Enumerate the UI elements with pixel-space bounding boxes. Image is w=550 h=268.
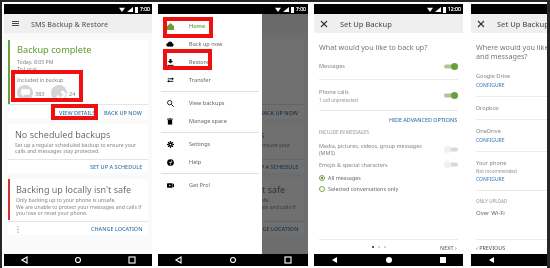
button[interactable]: Recents xyxy=(282,254,294,266)
staticText: Backing up locally isn't safe xyxy=(170,183,286,195)
button[interactable]: SET UP A SCHEDULE xyxy=(90,163,148,170)
button[interactable]: Back xyxy=(172,254,184,266)
staticText: ‹ PREVIOUS xyxy=(476,244,506,251)
staticText: HIDE ADVANCED OPTIONS xyxy=(389,116,458,123)
button[interactable]: Recents xyxy=(437,254,449,266)
staticText: Restore xyxy=(189,58,210,66)
staticText: 24 xyxy=(69,90,76,97)
button[interactable]: HIDE ADVANCED OPTIONS xyxy=(389,116,458,123)
button[interactable]: Media, pictures, videos, group messages … xyxy=(319,142,458,156)
staticText: To Local xyxy=(17,65,37,72)
button[interactable]: Back xyxy=(328,254,340,266)
button[interactable]: Close xyxy=(471,14,491,33)
staticText: CHANGE LOCATION xyxy=(91,225,143,232)
staticText: Media, pictures, videos, group messages … xyxy=(319,142,438,156)
button[interactable]: Google Drive xyxy=(476,72,547,89)
staticText: BACK UP NOW xyxy=(104,109,143,116)
button[interactable]: Messages xyxy=(319,62,458,70)
staticText: We are unable to protect your messages a… xyxy=(170,203,299,217)
staticText: BACK UP NOW xyxy=(260,109,299,116)
button[interactable]: Home xyxy=(72,254,84,266)
staticText: CONFIGURE xyxy=(476,82,505,89)
staticText: 383 xyxy=(35,90,45,97)
staticText: Messages xyxy=(319,62,444,70)
staticText: Only backing up to your phone is unsafe. xyxy=(16,196,116,203)
staticText: We are unable to protect your messages a… xyxy=(16,203,143,217)
staticText: Your phone xyxy=(476,159,507,167)
staticText: ONLY UPLOAD xyxy=(476,198,508,204)
staticText: Included in backup xyxy=(17,76,64,83)
button[interactable]: Settings xyxy=(158,135,262,153)
staticText: Settings xyxy=(189,140,211,148)
staticText: Get Pro! xyxy=(189,181,211,189)
button[interactable]: OneDrive xyxy=(476,127,547,144)
staticText: SET UP A SCHEDULE xyxy=(90,163,143,170)
button[interactable]: BACK UP NOW xyxy=(100,109,148,116)
button[interactable]: View backups xyxy=(158,94,262,112)
staticText: VIEW DETAILS xyxy=(59,109,96,116)
staticText: SMS Backup & Restore xyxy=(31,19,109,29)
button[interactable]: More options xyxy=(14,225,22,233)
button[interactable]: Back up now xyxy=(158,35,262,53)
button[interactable]: Your phone xyxy=(476,159,547,183)
staticText: OneDrive xyxy=(476,127,501,135)
staticText: 7:00 xyxy=(140,6,150,13)
staticText: Where would you like to back up your cal… xyxy=(476,42,547,62)
staticText: Set up a regular scheduled backup to ens… xyxy=(169,141,299,155)
staticText: NEXT › xyxy=(440,244,457,251)
staticText: CHANGE LOCATION xyxy=(247,225,299,232)
staticText: CONFIGURE xyxy=(476,137,505,144)
button[interactable]: Back xyxy=(485,254,497,266)
staticText: View backups xyxy=(189,99,225,107)
staticText: Home xyxy=(189,22,206,30)
staticText: Today, 8:05 PM xyxy=(17,58,54,65)
staticText: No scheduled backups xyxy=(169,128,265,140)
button[interactable]: Phone calls xyxy=(319,88,458,103)
staticText: Not recommended xyxy=(476,168,517,174)
button[interactable]: Manage space xyxy=(158,112,262,130)
staticText: Backing up locally isn't safe xyxy=(16,183,132,195)
button[interactable]: Home xyxy=(158,17,262,35)
staticText: Set Up Backup xyxy=(497,19,547,29)
staticText: What would you like to back up? xyxy=(319,42,428,52)
staticText: SET UP A SCHEDULE xyxy=(246,163,299,170)
staticText: Emojis & special characters xyxy=(319,161,444,168)
button[interactable]: Selected conversations only xyxy=(319,185,399,192)
button[interactable]: All messages xyxy=(319,174,361,181)
button[interactable]: Close xyxy=(314,14,334,33)
button[interactable]: Home xyxy=(383,254,395,266)
staticText: Google Drive xyxy=(476,72,511,80)
button[interactable]: Emojis & special characters xyxy=(319,161,458,168)
staticText: All messages xyxy=(328,174,361,181)
staticText: Manage space xyxy=(189,117,227,125)
button[interactable]: Dropbox xyxy=(476,104,547,112)
staticText: 1 call unprotected xyxy=(319,97,358,103)
staticText: Help xyxy=(189,158,202,166)
staticText: No scheduled backups xyxy=(15,128,111,140)
button[interactable]: VIEW DETAILS xyxy=(55,109,100,116)
staticText: Transfer xyxy=(189,76,211,84)
button[interactable]: Restore xyxy=(158,53,262,71)
staticText: Dropbox xyxy=(476,104,499,112)
staticText: INCLUDE IN MESSAGES xyxy=(319,129,370,135)
button[interactable]: Home xyxy=(227,254,239,266)
staticText: 12:00 xyxy=(448,6,461,13)
staticText: Over Wi-Fi xyxy=(476,209,505,217)
staticText: Only backing up to your phone is unsafe. xyxy=(170,196,270,203)
staticText: Backup complete xyxy=(17,43,92,56)
button[interactable]: CHANGE LOCATION xyxy=(91,225,148,232)
staticText: Set up a regular scheduled backup to ens… xyxy=(15,141,143,155)
button[interactable]: Recents xyxy=(126,254,138,266)
staticText: 7:00 xyxy=(296,6,306,13)
button[interactable]: NEXT › xyxy=(440,244,458,251)
button[interactable]: Get Pro! xyxy=(158,176,262,194)
button[interactable]: Help xyxy=(158,153,262,171)
staticText: Phone calls xyxy=(319,88,349,96)
button[interactable]: Menu xyxy=(4,14,26,33)
button[interactable]: ‹ PREVIOUS xyxy=(476,244,506,251)
staticText: Set Up Backup xyxy=(340,19,392,29)
button[interactable]: Back xyxy=(18,254,30,266)
button[interactable]: Transfer xyxy=(158,71,262,89)
staticText: Back up now xyxy=(189,40,223,48)
